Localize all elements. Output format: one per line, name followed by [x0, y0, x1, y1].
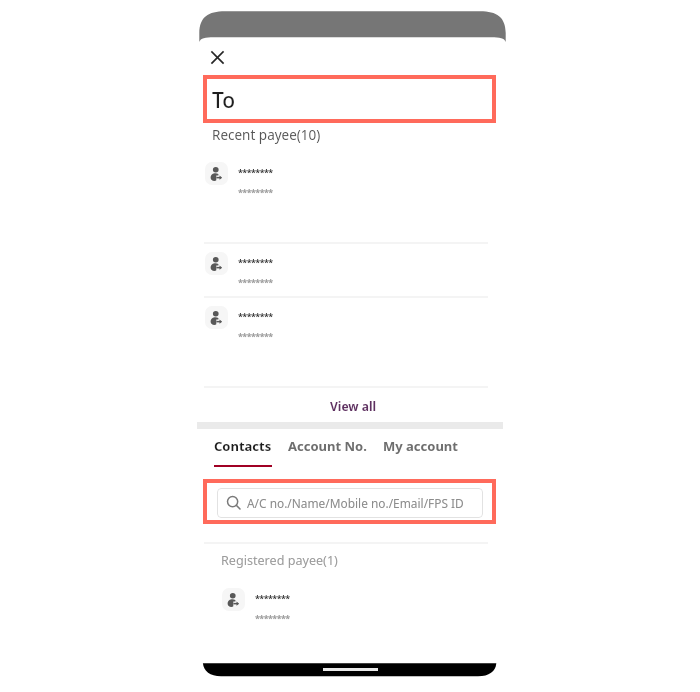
other: Search [227, 496, 241, 510]
button[interactable]: Close [203, 43, 231, 71]
button[interactable] [222, 588, 506, 611]
staticText: ******** [238, 310, 273, 322]
staticText: View all [330, 398, 377, 414]
staticText: Recent payee(10) [212, 126, 321, 144]
staticText: My account [383, 437, 458, 455]
staticText: Account No. [288, 437, 367, 455]
staticText: ******** [238, 186, 273, 198]
staticText: ******** [238, 330, 273, 342]
staticText: ******** [255, 612, 290, 624]
staticText: To [212, 86, 236, 115]
button[interactable]: To [203, 75, 496, 123]
staticText: A/C no./Name/Mobile no./Email/FPS ID [247, 495, 464, 511]
button[interactable]: Search [217, 488, 483, 518]
button[interactable] [205, 306, 489, 329]
button[interactable]: My account [383, 437, 458, 467]
staticText: ******** [238, 276, 273, 288]
staticText: ******** [238, 256, 273, 268]
staticText: ******** [238, 166, 273, 178]
button[interactable]: Account No. [288, 437, 367, 467]
staticText: Contacts [214, 437, 272, 455]
staticText: ******** [255, 592, 290, 604]
button[interactable]: Contacts [214, 437, 272, 467]
button[interactable] [205, 252, 489, 275]
button[interactable]: View all [306, 394, 401, 418]
staticText: Registered payee(1) [221, 552, 338, 569]
button[interactable] [205, 162, 489, 185]
